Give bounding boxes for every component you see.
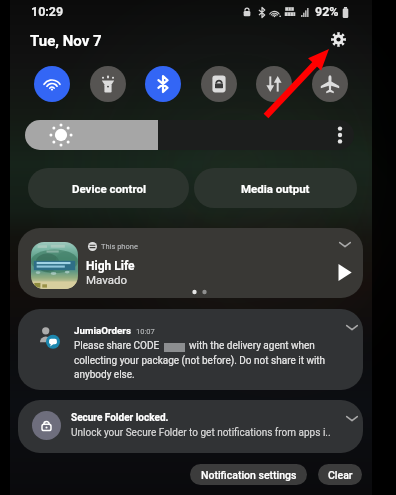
button[interactable]: Notification settings: [190, 464, 307, 485]
staticText: Secure Folder locked.: [71, 412, 169, 424]
button[interactable]: Airplane mode: [312, 66, 348, 102]
staticText: collecting your package (not before). Do…: [74, 355, 326, 367]
button[interactable]: Device control: [28, 168, 189, 208]
staticText: This phone: [101, 242, 138, 251]
staticText: JumiaOrders: [74, 325, 131, 336]
staticText: Tue, Nov 7: [30, 32, 102, 50]
staticText: High Life: [86, 259, 135, 273]
staticText: with the delivery agent when: [189, 340, 315, 352]
button[interactable]: Expand: [342, 317, 362, 337]
staticText: anybody else.: [74, 369, 135, 381]
button[interactable]: Flashlight: [90, 66, 126, 102]
staticText: 10:29: [31, 4, 64, 19]
button[interactable]: Bluetooth: [145, 66, 181, 102]
button[interactable]: Mobile data: [256, 66, 292, 102]
staticText: Please share CODE: [74, 340, 160, 352]
button[interactable]: Brightness: [25, 120, 354, 150]
staticText: Clear: [328, 469, 353, 481]
button[interactable]: Quick settings: [325, 26, 351, 52]
staticText: 92%: [315, 4, 339, 19]
button[interactable]: Play: [330, 258, 358, 286]
staticText: Device control: [72, 182, 146, 195]
staticText: Mavado: [86, 273, 127, 286]
button[interactable]: Secure Folder locked.: [18, 400, 363, 453]
button[interactable]: Auto rotate: [201, 66, 237, 102]
button[interactable]: Brightness options: [331, 120, 349, 150]
button[interactable]: Clear: [318, 464, 362, 485]
staticText: Media output: [241, 182, 310, 195]
button[interactable]: JumiaOrders: [18, 309, 363, 390]
staticText: Unlock your Secure Folder to get notific…: [71, 427, 331, 439]
button[interactable]: Expand: [342, 408, 362, 428]
button[interactable]: Wi-Fi: [34, 66, 70, 102]
staticText: Notification settings: [201, 469, 297, 481]
button[interactable]: This phone: [18, 228, 363, 298]
button[interactable]: Media output: [194, 168, 357, 208]
staticText: 10:07: [136, 327, 155, 336]
button[interactable]: Expand: [335, 234, 355, 254]
